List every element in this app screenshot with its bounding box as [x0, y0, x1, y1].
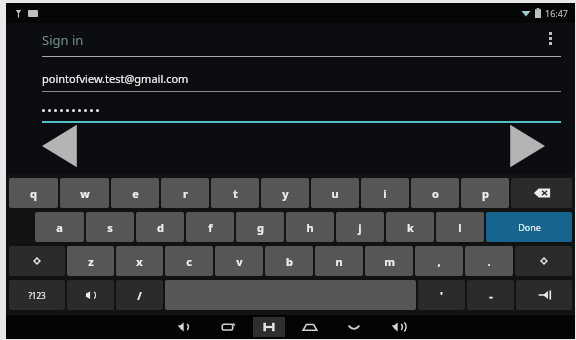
staticText: u: [331, 186, 339, 201]
button[interactable]: f: [186, 212, 234, 242]
staticText: ,: [437, 254, 441, 269]
button[interactable]: z: [67, 246, 114, 276]
button[interactable]: v: [215, 246, 263, 276]
staticText: -: [489, 288, 493, 303]
staticText: Done: [518, 221, 541, 233]
button[interactable]: t: [211, 178, 259, 208]
button[interactable]: k: [386, 212, 434, 242]
button[interactable]: Volume down: [175, 318, 193, 336]
staticText: ?123: [28, 290, 46, 301]
button[interactable]: d: [136, 212, 184, 242]
staticText: w: [80, 186, 90, 201]
button[interactable]: ,: [415, 246, 463, 276]
staticText: f: [208, 220, 213, 235]
button[interactable]: .: [465, 246, 513, 276]
button[interactable]: Previous: [40, 123, 80, 169]
staticText: c: [186, 254, 192, 269]
button[interactable]: a: [35, 212, 84, 242]
button[interactable]: p: [461, 178, 509, 208]
button[interactable]: Home: [301, 318, 319, 336]
button[interactable]: [42, 102, 561, 119]
button[interactable]: e: [111, 178, 159, 208]
staticText: .: [487, 254, 491, 269]
button[interactable]: ': [418, 280, 465, 310]
staticText: e: [132, 186, 139, 201]
staticText: /: [137, 288, 142, 303]
button[interactable]: Next: [507, 123, 547, 169]
button[interactable]: [516, 280, 572, 310]
staticText: z: [88, 254, 94, 269]
staticText: Sign in: [42, 31, 84, 49]
button[interactable]: m: [365, 246, 413, 276]
staticText: i: [383, 186, 387, 201]
staticText: a: [56, 220, 63, 235]
button[interactable]: Screenshot: [253, 317, 285, 337]
button[interactable]: o: [411, 178, 459, 208]
button[interactable]: r: [161, 178, 209, 208]
button[interactable]: g: [236, 212, 284, 242]
staticText: o: [432, 186, 439, 201]
staticText: pointofview.test@gmail.com: [42, 71, 189, 86]
staticText: h: [306, 220, 314, 235]
staticText: p: [482, 186, 489, 201]
staticText: r: [183, 186, 188, 201]
staticText: x: [136, 254, 143, 269]
staticText: l: [458, 220, 462, 235]
button[interactable]: i: [361, 178, 409, 208]
staticText: g: [257, 220, 264, 235]
staticText: b: [286, 254, 293, 269]
button[interactable]: Volume up: [389, 318, 407, 336]
staticText: y: [282, 186, 289, 201]
button[interactable]: /: [116, 280, 163, 310]
staticText: 16:47: [545, 7, 569, 19]
button[interactable]: q: [9, 178, 58, 208]
button[interactable]: s: [86, 212, 134, 242]
button[interactable]: h: [286, 212, 334, 242]
staticText: ': [440, 288, 443, 303]
button[interactable]: [9, 246, 65, 276]
button[interactable]: n: [315, 246, 363, 276]
button[interactable]: More options: [539, 27, 561, 49]
button[interactable]: [515, 246, 572, 276]
button[interactable]: y: [261, 178, 309, 208]
button[interactable]: j: [336, 212, 384, 242]
staticText: m: [384, 254, 395, 269]
staticText: j: [358, 220, 362, 235]
button[interactable]: -: [467, 280, 514, 310]
staticText: s: [107, 220, 113, 235]
button[interactable]: [511, 178, 572, 208]
button[interactable]: ?123: [9, 280, 65, 310]
button[interactable]: Recents: [219, 318, 237, 336]
button[interactable]: Back: [345, 318, 363, 336]
button[interactable]: c: [165, 246, 213, 276]
staticText: q: [30, 186, 37, 201]
button[interactable]: w: [60, 178, 109, 208]
button[interactable]: [67, 280, 114, 310]
staticText: k: [407, 220, 414, 235]
button[interactable]: Done: [486, 212, 572, 242]
button[interactable]: u: [311, 178, 359, 208]
button[interactable]: b: [265, 246, 313, 276]
staticText: t: [233, 186, 238, 201]
button[interactable]: x: [116, 246, 163, 276]
button[interactable]: pointofview.test@gmail.com: [42, 69, 561, 88]
button[interactable]: l: [436, 212, 484, 242]
staticText: n: [335, 254, 343, 269]
staticText: v: [236, 254, 243, 269]
staticText: d: [157, 220, 164, 235]
